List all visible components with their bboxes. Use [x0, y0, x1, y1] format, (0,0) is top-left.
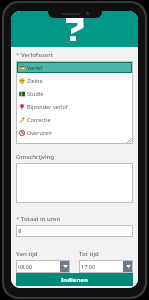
button[interactable]: Overuren — [16, 126, 133, 139]
staticText: Bijzonder verlof — [27, 103, 68, 110]
staticText: Totaal in uren — [21, 215, 61, 223]
staticText: 08:00 — [18, 263, 33, 270]
staticText: * — [16, 51, 21, 59]
other: Logo — [65, 17, 85, 41]
staticText: Tot tijd — [79, 250, 99, 258]
staticText: Verlof — [27, 64, 43, 71]
button[interactable]: 8 — [16, 225, 133, 237]
staticText: Indienen — [61, 276, 88, 284]
staticText: Studie — [27, 90, 44, 97]
staticText: * — [16, 215, 21, 223]
button[interactable]: 17:00 — [79, 260, 133, 273]
staticText: Correctie — [27, 116, 51, 123]
other: Open tijd keuzelijst — [123, 260, 133, 273]
button[interactable]: Ziekte — [16, 74, 133, 87]
staticText: Overuren — [27, 129, 52, 136]
button[interactable]: 08:00 — [16, 260, 70, 273]
staticText: Verlofsoort — [21, 51, 54, 59]
button[interactable]: Studie — [16, 87, 133, 100]
button[interactable]: Indienen — [16, 273, 133, 286]
button[interactable]: Correctie — [16, 113, 133, 126]
staticText: Omschrijving — [16, 153, 55, 161]
button[interactable]: Bijzonder verlof — [16, 100, 133, 113]
staticText: Van tijd — [16, 250, 38, 258]
staticText: 17:00 — [81, 263, 96, 270]
staticText: 8 — [18, 227, 22, 235]
button[interactable] — [16, 163, 133, 203]
button[interactable]: Verlof — [17, 62, 132, 73]
other: Open tijd keuzelijst — [60, 260, 70, 273]
staticText: Ziekte — [27, 77, 43, 84]
